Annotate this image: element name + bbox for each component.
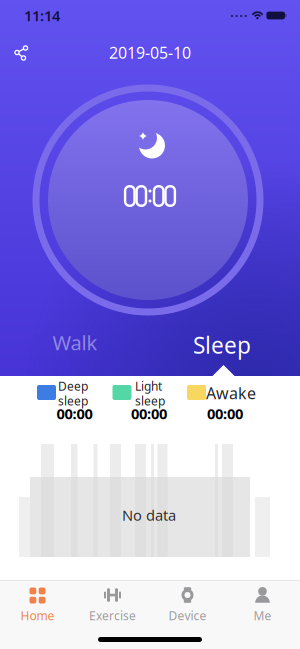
staticText: 00:00 bbox=[56, 404, 92, 423]
button[interactable]: Me bbox=[225, 583, 299, 627]
staticText: 11:14 bbox=[24, 6, 60, 25]
staticText: 00:00 bbox=[207, 404, 243, 423]
button[interactable]: Home bbox=[0, 583, 74, 627]
staticText: Me bbox=[253, 607, 271, 623]
button[interactable]: Exercise bbox=[75, 583, 149, 627]
staticText: Exercise bbox=[89, 607, 136, 623]
staticText: Device bbox=[168, 607, 206, 623]
staticText: 2019-05-10 bbox=[109, 42, 191, 63]
staticText: sleep bbox=[135, 393, 165, 409]
staticText: Deep bbox=[58, 378, 88, 394]
staticText: 00:00 bbox=[131, 404, 167, 423]
button[interactable]: Sleep bbox=[177, 328, 267, 362]
button[interactable]: Device bbox=[150, 583, 224, 627]
staticText: Light bbox=[135, 378, 162, 394]
button[interactable] bbox=[6, 38, 36, 68]
staticText: Home bbox=[20, 607, 54, 623]
staticText: Walk bbox=[52, 329, 97, 356]
staticText: sleep bbox=[58, 393, 88, 409]
staticText: Awake bbox=[206, 382, 256, 404]
button[interactable]: Walk bbox=[30, 325, 120, 359]
staticText: Sleep bbox=[193, 330, 251, 360]
staticText: No data bbox=[122, 505, 176, 525]
